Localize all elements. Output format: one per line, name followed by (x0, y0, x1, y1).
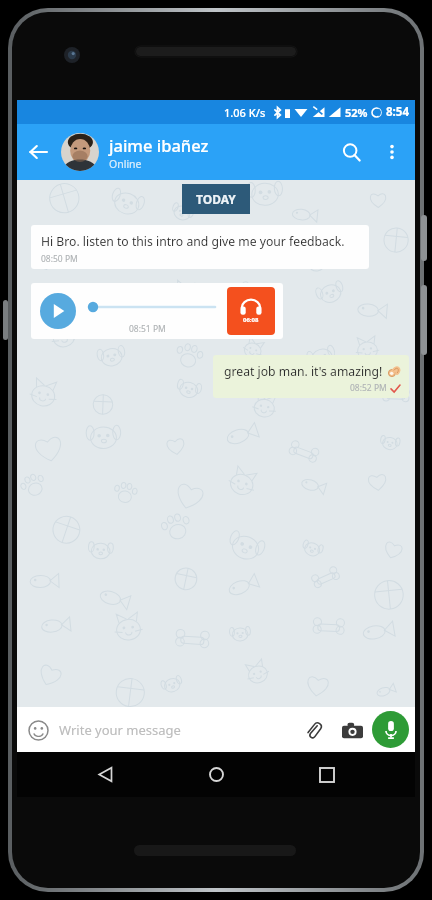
staticText: TODAY (196, 191, 236, 207)
button[interactable]: great job man. it's amazing! (213, 355, 409, 398)
button[interactable]: jaime ibañez (61, 124, 329, 180)
staticText: 08:51 PM (129, 323, 166, 335)
button[interactable]: Home (193, 752, 239, 797)
button[interactable]: Back (17, 131, 59, 173)
button[interactable]: Play audio (40, 293, 76, 329)
staticText: 52% (345, 105, 368, 120)
button[interactable]: More options (373, 133, 411, 171)
button[interactable]: Camera (334, 712, 370, 748)
button[interactable]: Play audio (31, 283, 283, 339)
button[interactable]: Emoji (17, 709, 59, 751)
button[interactable]: Attach file (296, 713, 330, 747)
staticText: Online (109, 157, 142, 171)
button[interactable]: Search (329, 130, 373, 174)
staticText: 1.06 K/s (224, 105, 266, 120)
staticText: great job man. it's amazing! (224, 363, 383, 380)
staticText: 8:54 (386, 104, 409, 120)
staticText: Hi Bro. listen to this intro and give me… (41, 233, 345, 250)
button[interactable]: Hi Bro. listen to this intro and give me… (31, 225, 369, 269)
staticText: 06:08 (243, 316, 259, 324)
button[interactable]: Audio track (227, 287, 275, 335)
staticText: jaime ibañez (109, 134, 209, 156)
button[interactable]: TODAY (182, 184, 250, 214)
button[interactable]: Record voice message (372, 711, 409, 748)
button[interactable]: Back (82, 752, 128, 797)
button[interactable]: Recent apps (304, 752, 350, 797)
staticText: 08:50 PM (41, 253, 78, 265)
staticText: Write your message (59, 721, 181, 739)
staticText: 08:52 PM (350, 382, 387, 394)
button[interactable]: Write your message (59, 707, 296, 752)
